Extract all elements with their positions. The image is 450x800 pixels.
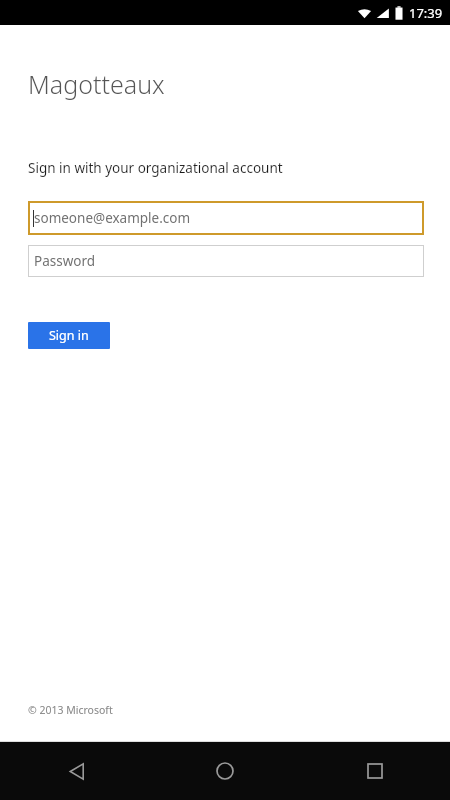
button[interactable]: Home — [150, 742, 300, 800]
button[interactable]: someone@example.com — [28, 201, 424, 235]
staticText: someone@example.com — [34, 209, 191, 227]
staticText: Magotteaux — [28, 67, 165, 101]
button[interactable]: Password — [28, 245, 424, 277]
staticText: Sign in — [49, 327, 89, 344]
staticText: 17:39 — [409, 4, 443, 22]
staticText: Sign in with your organizational account — [28, 159, 283, 177]
staticText: Password — [34, 252, 96, 270]
button[interactable]: Back — [0, 742, 150, 800]
staticText: © 2013 Microsoft — [28, 703, 113, 717]
button[interactable]: Recent apps — [300, 742, 450, 800]
button[interactable]: Sign in — [28, 322, 110, 349]
